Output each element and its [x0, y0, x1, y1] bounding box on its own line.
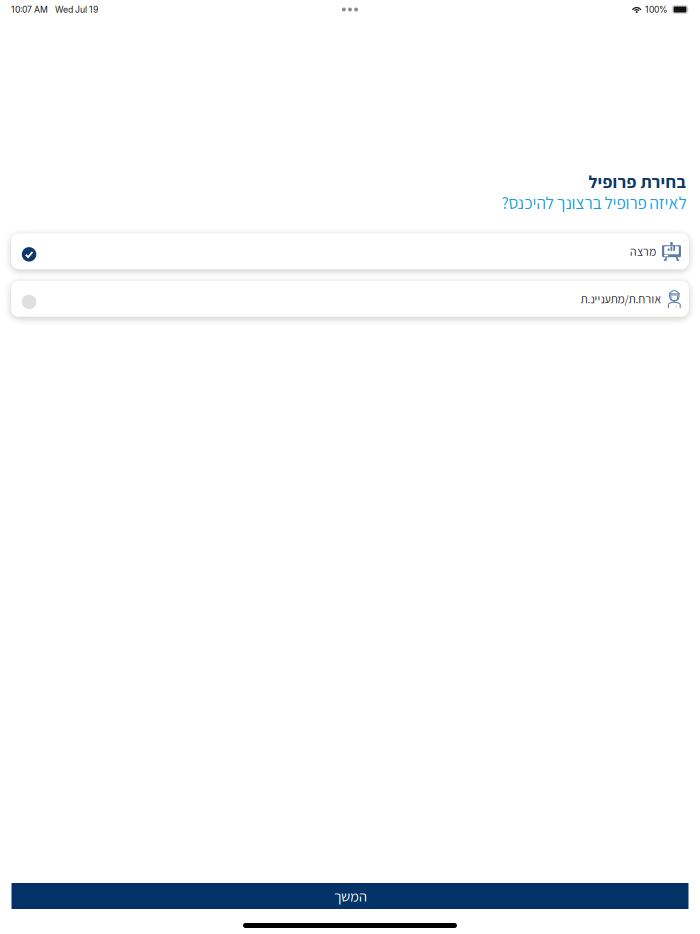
staticText: Wed Jul 19 [55, 4, 98, 15]
button[interactable]: מרצה [11, 233, 689, 269]
staticText: 10:07 AM [11, 4, 48, 15]
staticText: בחירת פרופיל [588, 170, 686, 193]
staticText: אורח.ת/מתעניינ.ת [580, 291, 661, 307]
staticText: מרצה [629, 243, 655, 259]
staticText: 100% [645, 4, 668, 15]
staticText: לאיזה פרופיל ברצונך להיכנס? [501, 191, 686, 214]
staticText: המשך [333, 886, 366, 906]
button[interactable]: המשך [11, 883, 688, 909]
button[interactable]: אורח.ת/מתעניינ.ת [11, 281, 689, 317]
